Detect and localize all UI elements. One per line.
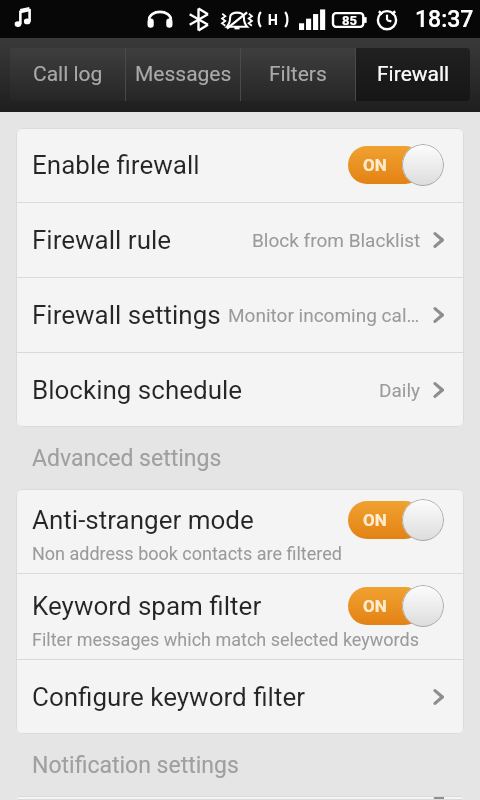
staticText: H (268, 12, 278, 28)
staticText: Daily (379, 379, 421, 401)
button[interactable]: Call log (10, 48, 125, 101)
staticText: Monitor incoming calls and messages (228, 304, 421, 326)
staticText: Anti-stranger mode (32, 505, 254, 535)
staticText: Filter messages which match selected key… (32, 629, 419, 650)
staticText: Notification settings (32, 752, 239, 779)
staticText: Firewall rule (32, 225, 252, 255)
button[interactable]: Toggle (348, 584, 444, 628)
staticText: Call log (33, 62, 103, 87)
staticText: Non address book contacts are filtered (32, 543, 342, 564)
staticText: 18:37 (415, 6, 474, 33)
staticText: Messages (135, 62, 232, 87)
staticText: Blocking schedule (32, 375, 379, 405)
staticText: Enable firewall (32, 150, 200, 180)
staticText: Configure keyword filter (32, 682, 433, 712)
staticText: Notification tone (32, 796, 360, 800)
staticText: Keyword spam filter (32, 591, 262, 621)
button[interactable]: Firewall settings (16, 278, 464, 352)
staticText: 85 (342, 13, 357, 28)
staticText: Default (360, 796, 421, 800)
button[interactable]: Toggle (348, 143, 444, 187)
button[interactable]: Notification tone (16, 796, 464, 800)
button[interactable]: Firewall (356, 48, 470, 101)
staticText: Firewall settings (32, 300, 228, 330)
staticText: ON (363, 155, 387, 175)
button[interactable]: Blocking schedule (16, 353, 464, 427)
staticText: Firewall (377, 62, 450, 87)
button[interactable]: Enable firewall (16, 128, 464, 202)
staticText: Advanced settings (32, 445, 222, 472)
staticText: ON (363, 596, 387, 616)
button[interactable]: Toggle (348, 498, 444, 542)
button[interactable]: Firewall rule (16, 203, 464, 277)
button[interactable]: Messages (126, 48, 240, 101)
staticText: ON (363, 510, 387, 530)
staticText: Filters (269, 62, 327, 87)
button[interactable]: Keyword spam filter (16, 574, 464, 659)
button[interactable]: Anti-stranger mode (16, 489, 464, 573)
button[interactable]: Configure keyword filter (16, 660, 464, 734)
staticText: Block from Blacklist (252, 229, 421, 251)
button[interactable]: Filters (241, 48, 355, 101)
